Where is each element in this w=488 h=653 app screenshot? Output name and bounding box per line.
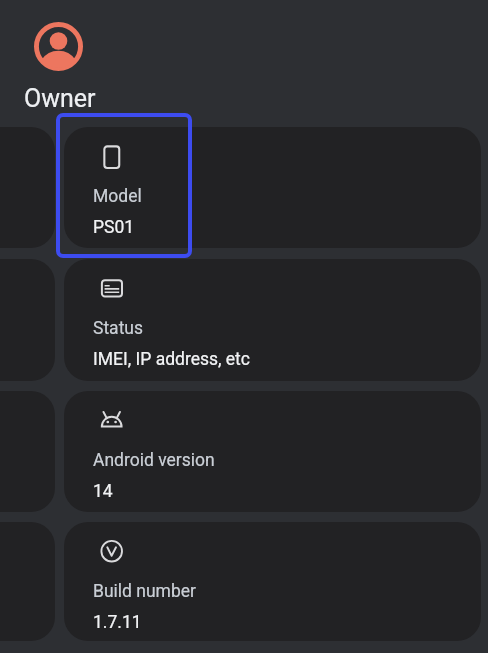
staticText: Android version [93,450,215,471]
button[interactable]: Android version [64,391,481,512]
staticText: IMEI, IP address, etc [93,349,250,370]
staticText: Model [93,186,142,207]
button[interactable]: Model [64,127,481,248]
staticText: 1.7.11 [93,612,142,633]
staticText: Build number [93,581,196,602]
button[interactable]: Status [64,259,481,381]
button[interactable]: Account avatar [34,22,83,71]
staticText: Status [93,318,144,339]
staticText: 14 [93,481,113,502]
staticText: Owner [24,84,96,113]
staticText: PS01 [93,217,135,238]
button[interactable]: Build number [64,522,481,641]
